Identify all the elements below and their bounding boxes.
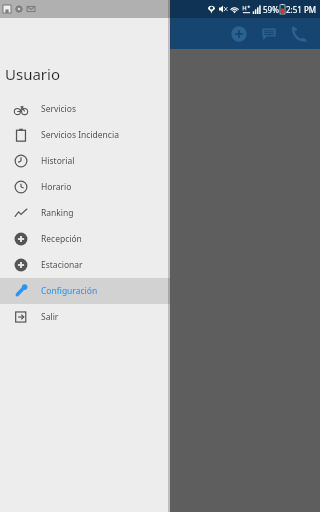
button[interactable]: Estacionar <box>0 252 170 278</box>
staticText: Usuario <box>5 64 60 84</box>
button[interactable]: Messages <box>254 19 284 49</box>
button[interactable]: Horario <box>0 174 170 200</box>
staticText: Horario <box>41 181 72 193</box>
staticText: 2:51 PM <box>286 4 317 15</box>
staticText: Ranking <box>41 207 74 219</box>
button[interactable]: Add <box>224 19 254 49</box>
staticText: Servicios Incidencia <box>41 129 119 141</box>
staticText: Estacionar <box>41 259 83 271</box>
staticText: Configuración <box>41 285 98 297</box>
button[interactable]: Historial <box>0 148 170 174</box>
staticText: Recepción <box>41 233 82 245</box>
button[interactable]: Recepción <box>0 226 170 252</box>
staticText: Servicios <box>41 103 76 115</box>
staticText: Historial <box>41 155 75 167</box>
button[interactable]: Salir <box>0 304 170 330</box>
button[interactable]: Configuración <box>0 278 170 304</box>
staticText: 59% <box>263 4 279 15</box>
button[interactable]: Ranking <box>0 200 170 226</box>
button[interactable]: Servicios Incidencia <box>0 122 170 148</box>
staticText: Salir <box>41 311 59 323</box>
button[interactable]: Servicios <box>0 96 170 122</box>
button[interactable]: Call <box>284 19 314 49</box>
